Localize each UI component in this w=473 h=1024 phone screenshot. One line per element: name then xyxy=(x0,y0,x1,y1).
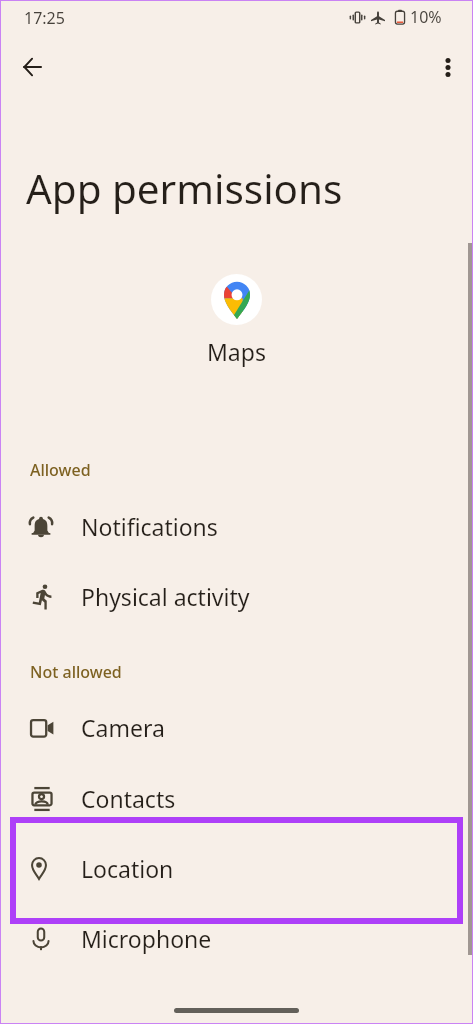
staticText: 10% xyxy=(410,6,442,28)
staticText: Notifications xyxy=(81,511,218,542)
button[interactable]: Microphone xyxy=(0,904,473,974)
staticText: Not allowed xyxy=(30,661,122,683)
staticText: Allowed xyxy=(30,459,91,481)
staticText: Maps xyxy=(207,336,266,367)
staticText: App permissions xyxy=(26,161,343,216)
staticText: Physical activity xyxy=(81,581,250,612)
button[interactable]: Notifications xyxy=(0,492,473,562)
button[interactable]: Camera xyxy=(0,693,473,763)
staticText: 17:25 xyxy=(24,7,65,29)
button[interactable]: Location xyxy=(0,834,473,904)
button[interactable]: More options xyxy=(424,43,472,91)
staticText: Contacts xyxy=(81,783,176,814)
staticText: Camera xyxy=(81,712,165,743)
staticText: Location xyxy=(81,853,174,884)
button[interactable]: Back xyxy=(8,43,56,91)
button[interactable]: Physical activity xyxy=(0,562,473,632)
staticText: Microphone xyxy=(81,923,212,954)
button[interactable]: Contacts xyxy=(0,764,473,834)
